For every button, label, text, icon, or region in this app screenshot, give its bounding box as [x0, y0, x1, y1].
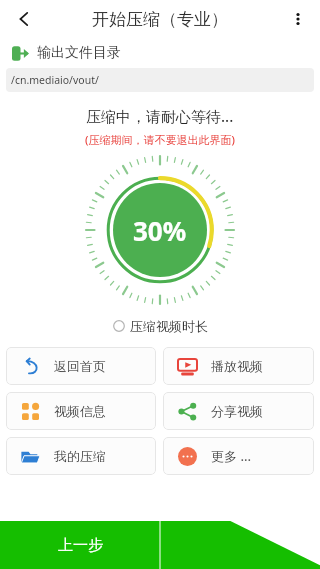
staticText: 30% [133, 213, 187, 248]
button[interactable]: 视频信息 [6, 392, 156, 430]
staticText: 视频信息 [54, 403, 106, 419]
staticText: 开始压缩（专业） [92, 9, 228, 30]
button[interactable]: /cn.mediaio/vout/VID_20200818_074900_115… [6, 68, 314, 92]
button[interactable]: Next step [160, 521, 320, 569]
button[interactable]: 压缩视频时长 [0, 313, 320, 339]
staticText: 压缩视频时长 [130, 318, 208, 334]
staticText: 更多 ... [211, 447, 251, 465]
button[interactable]: 分享视频 [163, 392, 314, 430]
staticText: (压缩期间，请不要退出此界面) [85, 132, 235, 147]
staticText: 上一步 [58, 536, 103, 555]
staticText: /cn.mediaio/vout/VID_20200818_074900_115… [11, 73, 309, 87]
button[interactable]: More options [276, 0, 320, 38]
staticText: 压缩中，请耐心等待... [86, 106, 234, 126]
button[interactable]: 上一步 [0, 521, 160, 569]
staticText: 分享视频 [211, 403, 263, 419]
staticText: 我的压缩 [54, 448, 106, 464]
staticText: 播放视频 [211, 358, 263, 374]
button[interactable]: 播放视频 [163, 347, 314, 385]
button[interactable]: 返回首页 [6, 347, 156, 385]
button[interactable]: 我的压缩 [6, 437, 156, 475]
staticText: 输出文件目录 [37, 44, 121, 62]
staticText: 返回首页 [54, 358, 106, 374]
button[interactable]: Back [0, 0, 48, 38]
button[interactable]: 更多 ... [163, 437, 314, 475]
